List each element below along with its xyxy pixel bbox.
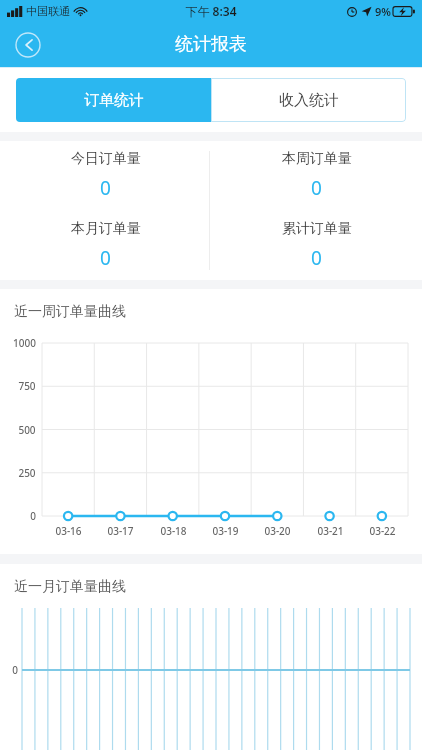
button[interactable]: 本周订单量: [211, 141, 422, 210]
button[interactable]: 订单统计: [16, 78, 211, 122]
staticText: 收入统计: [279, 91, 339, 110]
staticText: 0: [12, 663, 18, 677]
staticText: 统计报表: [175, 33, 247, 56]
staticText: 中国联通: [26, 4, 70, 18]
staticText: 03-19: [212, 524, 239, 538]
staticText: 0: [311, 245, 322, 271]
staticText: 03-20: [264, 524, 291, 538]
staticText: 9%: [375, 4, 391, 19]
staticText: 0: [30, 509, 36, 523]
staticText: 今日订单量: [71, 150, 141, 168]
staticText: 本周订单量: [282, 150, 352, 168]
staticText: 1000: [13, 336, 36, 350]
button[interactable]: 本月订单量: [0, 210, 211, 280]
staticText: 订单统计: [84, 91, 144, 110]
staticText: 本月订单量: [71, 220, 141, 238]
staticText: 近一周订单量曲线: [14, 303, 126, 321]
staticText: 下午 8:34: [185, 3, 237, 19]
staticText: 03-16: [55, 524, 82, 538]
staticText: 500: [18, 423, 36, 437]
staticText: 近一月订单量曲线: [14, 578, 126, 596]
button[interactable]: 收入统计: [211, 78, 406, 122]
button[interactable]: 累计订单量: [211, 210, 422, 280]
staticText: 累计订单量: [282, 220, 352, 238]
staticText: 03-18: [160, 524, 187, 538]
staticText: 0: [311, 175, 322, 201]
button[interactable]: 今日订单量: [0, 141, 211, 210]
staticText: 03-22: [369, 524, 396, 538]
staticText: 750: [18, 379, 36, 393]
staticText: 03-17: [107, 524, 134, 538]
staticText: 250: [18, 466, 36, 480]
staticText: 0: [100, 175, 111, 201]
button[interactable]: Back: [14, 31, 42, 59]
staticText: 03-21: [317, 524, 344, 538]
staticText: 0: [100, 245, 111, 271]
